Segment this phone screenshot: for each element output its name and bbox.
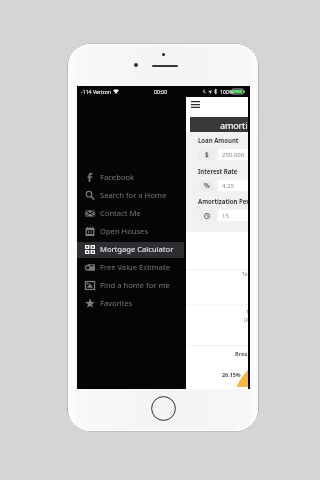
- button[interactable]: Open navigation menu: [191, 101, 200, 108]
- staticText: Interest Rate: [198, 167, 238, 175]
- staticText: 4.25: [222, 182, 234, 190]
- staticText: 250,000: [222, 151, 245, 159]
- staticText: -114 Verizon: [81, 88, 112, 95]
- button[interactable]: Facebook: [77, 168, 184, 186]
- button[interactable]: Search for a Home: [77, 186, 184, 204]
- staticText: 15: [222, 212, 229, 220]
- button[interactable]: Favorites: [77, 294, 184, 312]
- button[interactable]: Mortgage Calculator: [77, 240, 184, 258]
- staticText: Favorites: [100, 298, 133, 308]
- staticText: Loan Amount: [198, 136, 239, 144]
- staticText: 100%: [220, 88, 234, 95]
- staticText: %: [204, 181, 210, 190]
- staticText: Open Houses: [100, 226, 149, 236]
- staticText: Mortgage Calculator: [100, 244, 174, 254]
- button[interactable]: Free Value Estimate: [77, 258, 184, 276]
- staticText: amorti: [220, 119, 248, 131]
- button[interactable]: Find a home for me: [77, 276, 184, 294]
- staticText: Facebook: [100, 172, 135, 182]
- staticText: To: [242, 270, 248, 277]
- staticText: Search for a Home: [100, 190, 167, 200]
- staticText: Brea: [235, 350, 248, 357]
- staticText: Contact Me: [100, 208, 141, 218]
- staticText: Find a home for me: [100, 280, 170, 290]
- staticText: $: [205, 150, 209, 159]
- button[interactable]: Contact Me: [77, 204, 184, 222]
- staticText: (P: [244, 316, 248, 323]
- staticText: Amortization Period: [198, 197, 248, 205]
- staticText: Free Value Estimate: [100, 262, 170, 272]
- staticText: 26.15%: [222, 371, 241, 378]
- button[interactable]: Open Houses: [77, 222, 184, 240]
- staticText: T: [246, 308, 248, 315]
- staticText: 00:00: [154, 88, 168, 95]
